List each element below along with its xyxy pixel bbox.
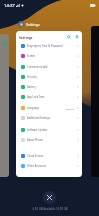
staticText: 4.50 GB Available / 8.00 GB (32, 207, 68, 211)
staticText: English (66, 107, 75, 110)
staticText: Battery (27, 85, 36, 89)
staticText: Fingerprint, Face & Password (27, 44, 63, 48)
button[interactable]: About Phone (16, 135, 82, 145)
button[interactable]: Search (66, 34, 72, 40)
staticText: Additional Settings (27, 116, 50, 120)
staticText: Convenience Aid (27, 65, 48, 69)
button[interactable]: Cloud Service (16, 151, 82, 161)
staticText: Settings (19, 35, 33, 39)
staticText: Screen (27, 54, 36, 58)
button[interactable]: Security (16, 72, 82, 82)
staticText: Other Accounts (27, 164, 46, 168)
button[interactable]: Close all (43, 191, 56, 204)
button[interactable]: Software Update (16, 125, 82, 135)
button[interactable]: Account (74, 34, 80, 40)
staticText: Language (27, 106, 40, 110)
staticText: App Lock Time (27, 95, 45, 99)
staticText: Cloud Service (27, 154, 44, 158)
button[interactable]: Screen (16, 51, 82, 61)
button[interactable]: Convenience Aid (16, 62, 82, 72)
staticText: Software Update (27, 128, 48, 132)
staticText: Security (27, 75, 37, 79)
staticText: Settings (26, 22, 40, 27)
button[interactable]: Battery (16, 82, 82, 92)
button[interactable]: Additional Settings (16, 113, 82, 123)
button[interactable]: Fingerprint, Face & Password (16, 41, 82, 51)
button[interactable]: App Lock Time (16, 92, 82, 102)
staticText: 14:37 (4, 3, 15, 9)
button[interactable]: Other Accounts (16, 161, 82, 171)
button[interactable]: Language (16, 103, 82, 113)
staticText: About Phone (27, 138, 43, 142)
